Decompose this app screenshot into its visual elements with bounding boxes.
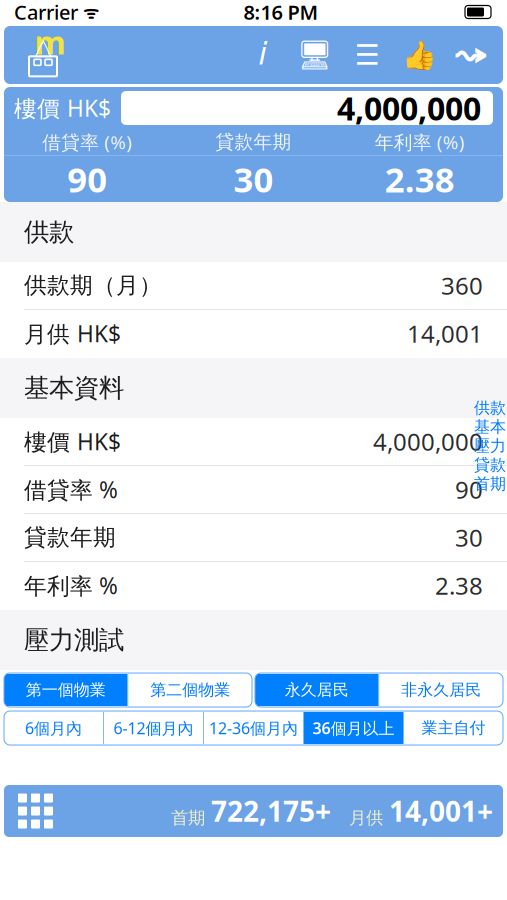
button[interactable]: 第二個物業 [128,674,252,706]
staticText: 首期 [474,474,506,494]
button[interactable]: Home [16,29,70,81]
button[interactable]: 供款 [473,400,507,416]
staticText: 36個月以上 [312,717,394,739]
button[interactable]: 36個月以上 [304,712,403,744]
button[interactable]: 貸款 [473,457,507,473]
staticText: 8:16 PM [243,0,318,25]
button[interactable]: 90 [4,156,170,202]
staticText: △ [34,34,51,59]
staticText: 樓價 HK$ [24,426,121,456]
staticText: 業主自付 [421,718,485,738]
staticText: 供款 [474,398,506,418]
staticText: 360 [441,270,483,301]
staticText: 𝑖 [258,39,267,71]
staticText: ☰ [354,39,379,71]
staticText: 借貸率 (%) [42,130,132,154]
button[interactable]: 壓力 [473,438,507,454]
button[interactable]: 業主自付 [404,712,503,744]
staticText: 基本資料 [24,372,124,403]
staticText: 第一個物業 [26,680,106,700]
staticText: 供款 [24,216,74,247]
button[interactable]: 第一個物業 [4,674,127,706]
staticText: 非永久居民 [401,680,481,700]
staticText: 6-12個月內 [113,717,193,739]
button[interactable]: 基本 [473,419,507,435]
staticText: ᯤ [78,0,99,23]
staticText: m [34,21,65,63]
staticText: 基本 [474,417,506,437]
button[interactable]: Property price [121,91,493,125]
staticText: 月供 HK$ [24,318,121,348]
button[interactable]: 樓價 HK$ [0,418,507,466]
staticText: 722,175+ [211,792,331,830]
staticText: 12-36個月內 [209,717,298,739]
button[interactable]: 供款期（月） [0,262,507,310]
button[interactable]: Like [399,29,439,81]
button[interactable]: 永久居民 [255,674,378,706]
staticText: 樓價 HK$ [14,93,111,123]
staticText: 永久居民 [285,680,349,700]
staticText: 14,001 [407,318,483,349]
staticText: 14,001+ [389,792,493,830]
staticText: 90 [67,156,107,202]
staticText: 👍 [401,39,436,71]
staticText: 30 [233,156,273,202]
staticText: 貸款 [474,455,506,475]
button[interactable]: 2.38 [337,156,503,202]
staticText: 供款期（月） [24,272,162,299]
staticText: Carrier [14,0,78,25]
button[interactable]: 30 [170,156,337,202]
button[interactable]: Information [243,29,283,81]
staticText: 4,000,000 [337,87,481,129]
staticText: 2.38 [435,570,483,601]
staticText: 4,000,000 [373,426,483,457]
button[interactable]: 首期 [473,476,507,492]
staticText: 月供 [349,807,383,829]
staticText: 借貸率 % [24,474,118,504]
staticText: 壓力測試 [24,624,124,655]
button[interactable]: 借貸率 % [0,466,507,514]
button[interactable]: 非永久居民 [379,674,503,706]
staticText: 年利率 % [24,570,118,600]
button[interactable]: 月供 HK$ [0,310,507,358]
staticText: 🖥 [297,39,333,71]
staticText: 首期 [171,807,205,829]
staticText: 90 [455,474,483,505]
button[interactable]: Share [451,29,491,81]
button[interactable]: 6-12個月內 [104,712,203,744]
staticText: 壓力 [474,436,506,456]
staticText: 貸款年期 [215,130,291,153]
button[interactable]: 12-36個月內 [204,712,303,744]
button[interactable]: Devices [295,29,335,81]
staticText: 貸款年期 [24,524,116,551]
button[interactable]: Summary: down payment 722,175 plus, mont… [0,785,507,837]
staticText: 2.38 [385,156,455,202]
staticText: 第二個物業 [150,680,230,700]
button[interactable]: 貸款年期 [0,514,507,562]
button[interactable]: 年利率 % [0,562,507,610]
staticText: 6個月內 [25,717,82,739]
staticText: ⤳ [453,41,489,69]
staticText: 30 [455,522,483,553]
button[interactable]: 6個月內 [4,712,103,744]
button[interactable]: Records [347,29,387,81]
staticText: 年利率 (%) [375,130,465,154]
